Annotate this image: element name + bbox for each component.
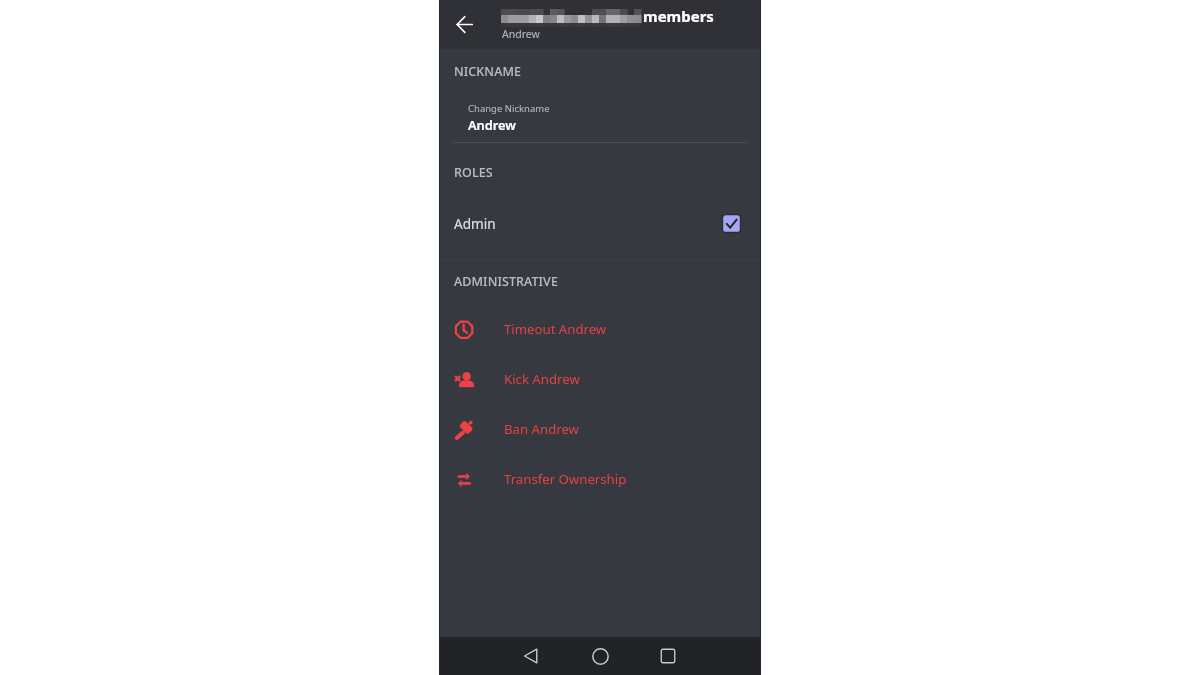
staticText: ROLES (454, 164, 493, 179)
staticText: ADMINISTRATIVE (454, 273, 558, 288)
button[interactable]: Kick Andrew (439, 355, 761, 405)
staticText: Andrew (502, 27, 540, 41)
button[interactable]: Transfer Ownership (439, 455, 761, 505)
button[interactable]: Recents (651, 639, 685, 673)
staticText: Andrew (468, 116, 516, 133)
button[interactable]: Back (514, 639, 548, 673)
staticText: Admin (454, 214, 496, 233)
button[interactable]: Admin (439, 204, 761, 242)
button[interactable]: Back (448, 8, 480, 40)
button[interactable]: Ban Andrew (439, 405, 761, 455)
staticText: Kick Andrew (504, 370, 580, 388)
button[interactable]: Timeout Andrew (439, 305, 761, 355)
staticText: Transfer Ownership (504, 470, 627, 488)
button[interactable]: Home (583, 639, 617, 673)
staticText: Change Nickname (468, 102, 550, 115)
staticText: Ban Andrew (504, 420, 579, 438)
staticText: members (643, 6, 714, 26)
staticText: Timeout Andrew (504, 320, 607, 338)
staticText: NICKNAME (454, 63, 522, 78)
